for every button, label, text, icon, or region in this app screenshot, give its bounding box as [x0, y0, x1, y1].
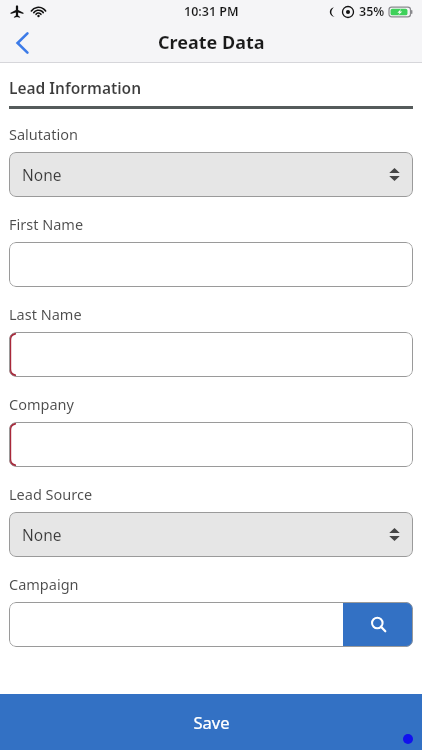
staticText: None: [22, 164, 62, 185]
staticText: None: [22, 524, 62, 545]
staticText: 10:31 PM: [184, 3, 239, 20]
button[interactable]: [9, 332, 413, 377]
button[interactable]: Back: [0, 22, 44, 63]
button[interactable]: None: [9, 152, 413, 197]
staticText: First Name: [9, 214, 84, 234]
staticText: Save: [193, 711, 230, 733]
staticText: Salutation: [9, 124, 78, 144]
button[interactable]: Search campaign: [343, 602, 413, 647]
button[interactable]: [9, 602, 343, 647]
button[interactable]: None: [9, 512, 413, 557]
button[interactable]: Save: [0, 694, 422, 750]
button[interactable]: [9, 422, 413, 467]
staticText: Company: [9, 394, 74, 414]
staticText: Create Data: [158, 30, 265, 55]
staticText: Lead Source: [9, 484, 93, 504]
staticText: Last Name: [9, 304, 82, 324]
staticText: Campaign: [9, 574, 79, 594]
staticText: 35%: [359, 3, 385, 20]
button[interactable]: [9, 242, 413, 287]
staticText: Lead Information: [9, 77, 142, 98]
